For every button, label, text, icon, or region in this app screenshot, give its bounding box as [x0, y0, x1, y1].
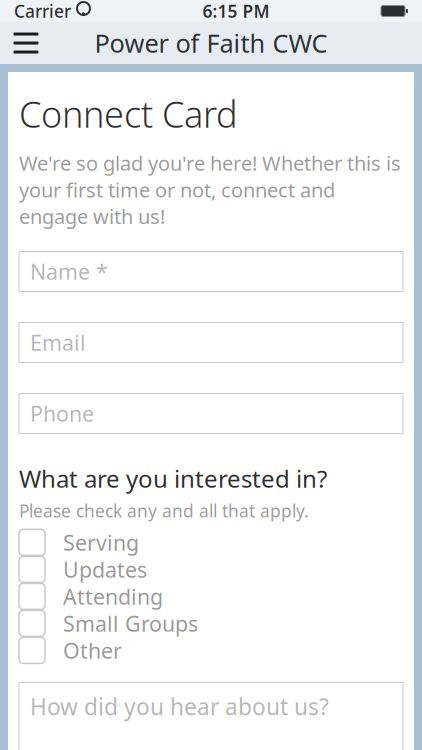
button[interactable]: Menu — [4, 22, 48, 64]
staticText: Serving — [63, 528, 139, 556]
staticText: 6:15 PM — [202, 0, 269, 22]
staticText: How did you hear about us? — [30, 691, 329, 721]
staticText: We're so glad you're here! Whether this … — [19, 150, 401, 229]
button[interactable]: Other — [19, 637, 403, 663]
staticText: Phone — [30, 399, 94, 428]
staticText: What are you interested in? — [19, 462, 327, 494]
staticText: Power of Faith CWC — [94, 26, 327, 60]
staticText: Carrier — [14, 0, 71, 22]
button[interactable]: Small Groups — [19, 610, 403, 636]
staticText: Small Groups — [63, 609, 198, 637]
button[interactable]: Serving — [19, 529, 403, 555]
staticText: Please check any and all that apply. — [19, 499, 309, 522]
staticText: Email — [30, 328, 86, 357]
button[interactable]: Phone — [19, 393, 403, 433]
button[interactable]: Name * — [19, 251, 403, 291]
staticText: Updates — [63, 555, 147, 583]
button[interactable]: Attending — [19, 583, 403, 609]
button[interactable]: Updates — [19, 556, 403, 582]
button[interactable]: How did you hear about us? — [19, 682, 403, 750]
staticText: Attending — [63, 582, 163, 610]
staticText: Connect Card — [19, 90, 238, 138]
staticText: Name * — [30, 257, 108, 286]
button[interactable]: Email — [19, 322, 403, 362]
staticText: Other — [63, 636, 122, 664]
